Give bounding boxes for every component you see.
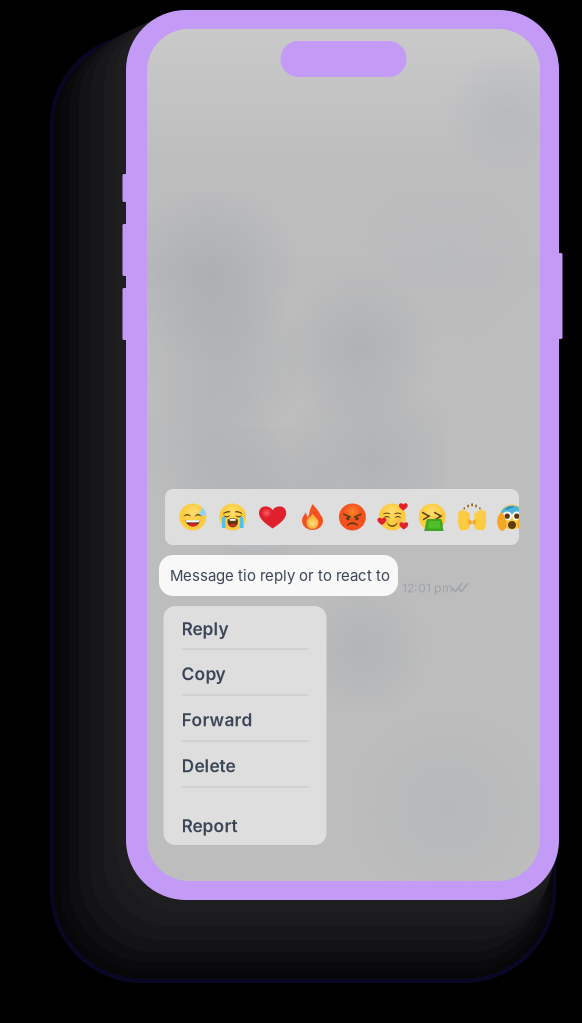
staticText: Message tio reply or to react to (170, 566, 390, 585)
button[interactable]: Forward (163, 699, 326, 741)
button[interactable]: Copy (163, 653, 326, 695)
staticText: Forward (181, 709, 252, 730)
staticText: Copy (181, 663, 225, 684)
button[interactable]: React (296, 501, 328, 533)
button[interactable]: React (177, 501, 209, 533)
button[interactable]: React (456, 501, 488, 533)
button[interactable]: React (376, 501, 408, 533)
button[interactable]: React (217, 501, 249, 533)
button[interactable]: Delete (163, 745, 326, 787)
staticText: 12:01 pm (402, 581, 453, 595)
button[interactable]: React (496, 501, 528, 533)
staticText: Reply (181, 618, 228, 639)
button[interactable]: React (257, 501, 289, 533)
staticText: Delete (181, 755, 235, 776)
button[interactable]: React (416, 501, 448, 533)
button[interactable]: React (336, 501, 368, 533)
staticText: Report (181, 815, 237, 836)
button[interactable]: Reply (163, 608, 326, 650)
button[interactable]: Report (163, 805, 326, 847)
